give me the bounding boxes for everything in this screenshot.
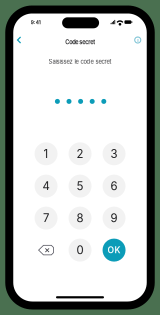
button[interactable]: 0 [68, 239, 91, 262]
staticText: 4 [42, 179, 49, 193]
button[interactable]: 4 [34, 175, 57, 198]
staticText: OK [107, 245, 120, 255]
staticText: i [137, 37, 138, 43]
staticText: 7 [43, 211, 49, 225]
staticText: 9 [110, 211, 117, 225]
button[interactable]: 9 [102, 207, 125, 230]
staticText: 9:41 [31, 20, 41, 25]
staticText: 6 [110, 179, 117, 193]
staticText: 2 [76, 147, 83, 161]
staticText: Code secret [65, 39, 95, 46]
staticText: 5 [76, 179, 83, 193]
button[interactable]: 8 [68, 207, 91, 230]
button[interactable]: 7 [34, 207, 57, 230]
button[interactable]: 2 [68, 142, 91, 165]
button[interactable]: 6 [102, 175, 125, 198]
button[interactable]: 1 [34, 142, 57, 165]
button[interactable]: Delete [34, 239, 57, 262]
button[interactable]: OK [102, 239, 125, 262]
staticText: 3 [110, 147, 117, 161]
button[interactable]: Help [131, 33, 145, 47]
staticText: Saisissez le code secret [48, 58, 111, 65]
staticText: 8 [76, 211, 83, 225]
staticText: 0 [76, 243, 83, 257]
button[interactable]: Back [13, 32, 25, 48]
button[interactable]: 5 [68, 175, 91, 198]
button[interactable]: 3 [102, 142, 125, 165]
staticText: 1 [43, 147, 48, 161]
